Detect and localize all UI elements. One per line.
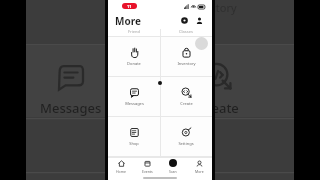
staticText: Events — [142, 169, 153, 174]
staticText: Friend — [128, 29, 140, 34]
button[interactable]: Settings — [179, 15, 190, 26]
staticText: 11 — [127, 4, 132, 9]
staticText: Scan — [169, 169, 177, 174]
button[interactable]: More — [186, 158, 212, 175]
staticText: rectory — [200, 0, 237, 15]
staticText: Classes — [179, 29, 193, 34]
button[interactable]: Shop — [108, 117, 160, 156]
button[interactable]: Scan — [160, 158, 186, 175]
staticText: Home — [116, 169, 126, 174]
staticText: More — [115, 14, 141, 28]
button[interactable]: Settings — [160, 117, 212, 156]
staticText: Messages — [40, 99, 102, 117]
staticText: Inventory — [177, 61, 196, 66]
button[interactable]: Inventory — [160, 37, 212, 76]
staticText: Messages — [125, 101, 144, 106]
button[interactable]: Donate — [108, 37, 160, 76]
staticText: Donate — [127, 61, 141, 66]
button[interactable]: Profile — [194, 15, 205, 26]
button[interactable]: Home — [108, 158, 134, 175]
button[interactable]: Messages — [108, 77, 160, 116]
staticText: Create — [180, 101, 193, 106]
button[interactable]: Events — [134, 158, 160, 175]
staticText: Settings — [178, 141, 194, 146]
button[interactable]: Create — [160, 77, 212, 116]
staticText: Shop — [129, 141, 139, 146]
staticText: More — [195, 169, 204, 174]
staticText: Create — [198, 99, 239, 117]
